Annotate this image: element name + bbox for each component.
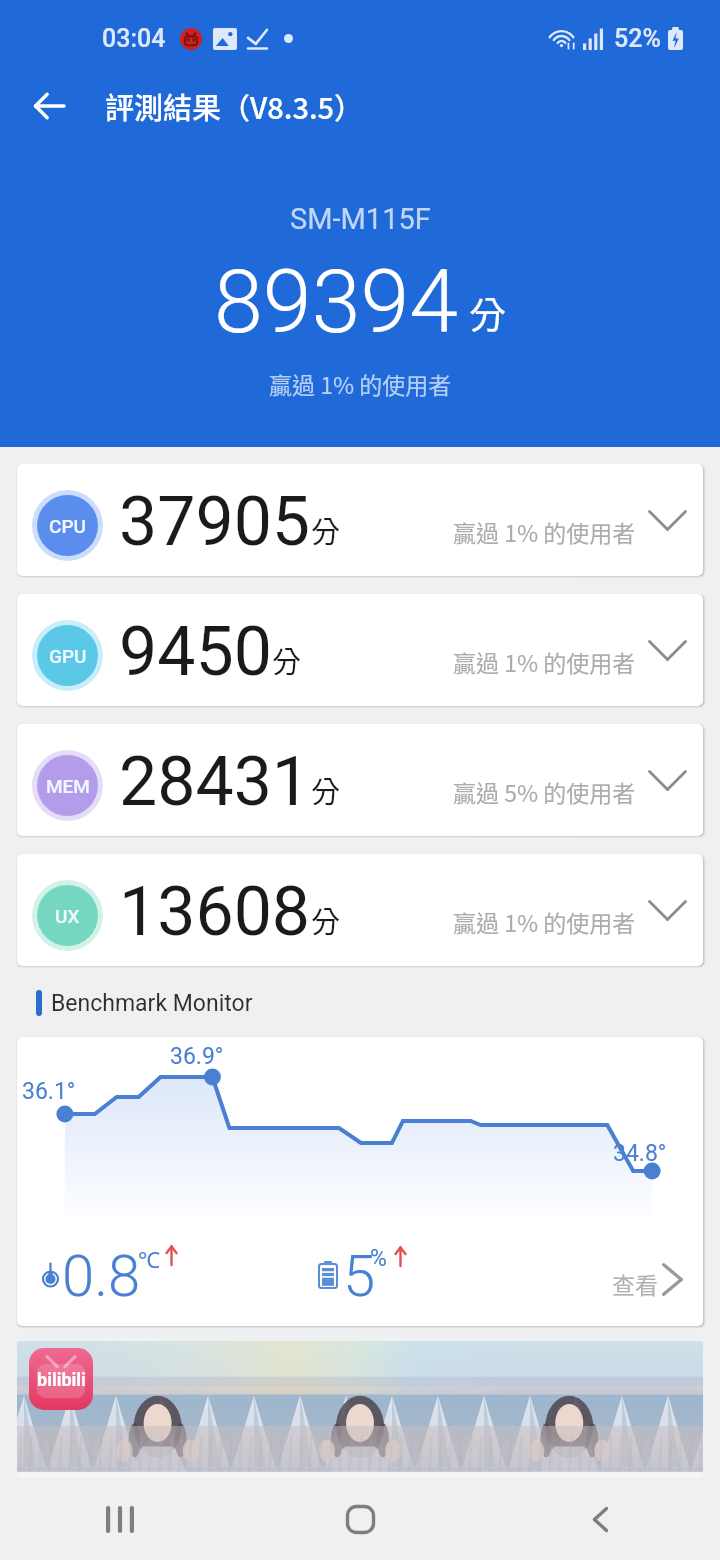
staticText: 查看 [612, 1267, 658, 1300]
button[interactable]: CPU [17, 464, 703, 576]
button[interactable]: Recent apps [0, 1478, 240, 1560]
staticText: 贏過 1% 的使用者 [453, 905, 636, 938]
staticText: 34.8° [613, 1140, 667, 1167]
staticText: 評測結果（V8.3.5） [105, 85, 364, 127]
staticText: 9450 [119, 612, 272, 692]
staticText: CPU [49, 515, 86, 537]
staticText: 89394 [214, 250, 459, 353]
staticText: 贏過 5% 的使用者 [453, 775, 636, 808]
staticText: 0.8 [62, 1242, 141, 1310]
button[interactable]: Home [240, 1478, 480, 1560]
staticText: MEM [46, 775, 90, 797]
button[interactable]: GPU [17, 594, 703, 706]
staticText: 分 [311, 769, 341, 811]
staticText: 分 [469, 286, 506, 340]
staticText: 52% [614, 24, 661, 53]
staticText: 分 [311, 899, 341, 941]
staticText: bilibili [37, 1369, 86, 1390]
button[interactable]: 36.1° [17, 1037, 703, 1326]
staticText: 5 [343, 1242, 376, 1310]
staticText: 贏過 1% 的使用者 [453, 645, 636, 678]
staticText: 13608 [119, 872, 311, 952]
button[interactable]: UX [17, 854, 703, 966]
staticText: 37905 [119, 482, 311, 562]
staticText: 03:04 [102, 24, 166, 53]
staticText: % [370, 1245, 387, 1272]
staticText: ℃ [138, 1244, 160, 1274]
staticText: Benchmark Monitor [51, 990, 253, 1017]
button[interactable]: View details [586, 1243, 686, 1301]
staticText: SM-M115F [290, 202, 431, 236]
staticText: 36.9° [170, 1043, 224, 1070]
staticText: 28431 [119, 742, 311, 822]
staticText: 分 [272, 639, 302, 681]
button[interactable]: MEM [17, 724, 703, 836]
staticText: GPU [49, 645, 87, 667]
staticText: UX [55, 905, 80, 927]
button[interactable]: bilibili advertisement [17, 1341, 703, 1478]
staticText: 贏過 1% 的使用者 [269, 367, 452, 400]
button[interactable]: Back [17, 74, 81, 138]
staticText: 分 [311, 509, 341, 551]
button[interactable]: Back [480, 1478, 720, 1560]
staticText: 36.1° [22, 1078, 76, 1105]
staticText: 贏過 1% 的使用者 [453, 515, 636, 548]
